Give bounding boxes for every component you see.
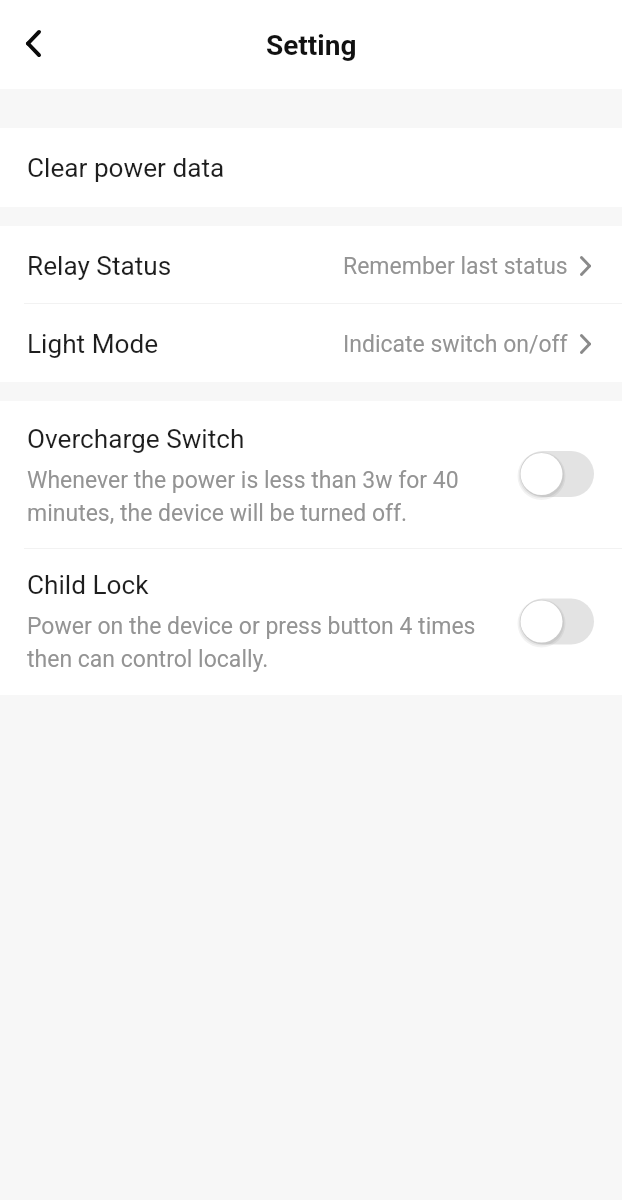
button[interactable]: Back — [9, 21, 57, 65]
staticText: Whenever the power is less than 3w for 4… — [27, 467, 502, 527]
staticText: Power on the device or press button 4 ti… — [27, 613, 502, 673]
staticText: Child Lock — [27, 570, 149, 601]
staticText: Relay Status — [27, 251, 172, 282]
staticText: Clear power data — [27, 153, 225, 184]
button[interactable]: Relay Status — [0, 226, 622, 304]
button[interactable]: Overcharge Switch — [516, 450, 593, 502]
staticText: Overcharge Switch — [27, 424, 245, 455]
staticText: Setting — [266, 29, 357, 62]
staticText: Light Mode — [27, 329, 159, 360]
button[interactable]: Light Mode — [0, 304, 622, 382]
staticText: Indicate switch on/off — [343, 331, 568, 358]
button[interactable]: Clear power data — [0, 128, 622, 207]
staticText: Remember last status — [343, 253, 568, 280]
button[interactable]: Child Lock — [516, 596, 593, 648]
